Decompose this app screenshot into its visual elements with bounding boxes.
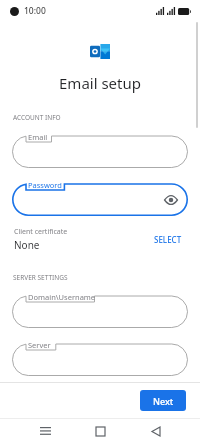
staticText: Domain\Username	[28, 292, 96, 302]
staticText: None	[14, 238, 40, 252]
staticText: Server	[28, 340, 51, 350]
staticText: Next	[153, 395, 174, 407]
button[interactable]: Back	[145, 420, 167, 442]
button[interactable]: Server	[12, 338, 188, 376]
staticText: SERVER SETTINGS	[13, 273, 68, 282]
button[interactable]: Home	[89, 420, 111, 442]
button[interactable]: Email	[12, 130, 188, 168]
staticText: Email	[28, 132, 48, 142]
button[interactable]: Client certificate	[0, 224, 200, 255]
staticText: SELECT	[154, 234, 182, 245]
button[interactable]: SELECT	[150, 230, 186, 249]
staticText: Password	[28, 180, 62, 190]
staticText: Email setup	[0, 73, 200, 93]
button[interactable]: Password	[12, 178, 188, 216]
staticText: Client certificate	[14, 227, 68, 237]
button[interactable]: Recent apps	[34, 420, 56, 442]
button[interactable]: Next	[140, 390, 186, 411]
button[interactable]: Domain\Username	[12, 290, 188, 328]
staticText: ACCOUNT INFO	[13, 113, 61, 122]
staticText: 10:00	[24, 5, 46, 17]
button[interactable]: Show password	[164, 193, 178, 207]
